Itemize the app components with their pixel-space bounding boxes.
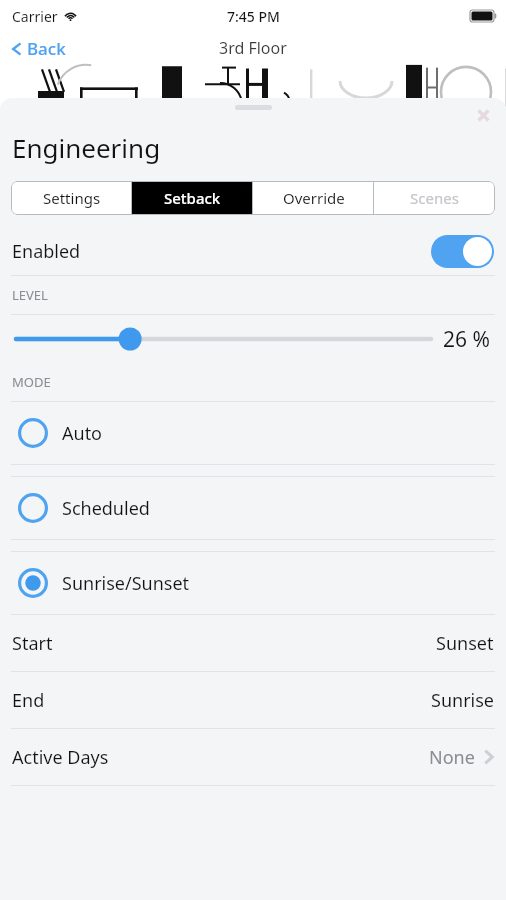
staticText: Sunrise [431,688,494,713]
staticText: Override [283,188,345,208]
staticText: Auto [62,421,103,446]
button[interactable]: Close [468,102,498,128]
staticText: Scenes [410,188,459,208]
staticText: 3rd Floor [219,37,287,59]
staticText: Active Days [12,745,109,770]
staticText: MODE [12,373,51,391]
staticText: Sunset [436,631,494,656]
button[interactable]: Back [0,33,76,64]
button[interactable] [16,324,431,354]
staticText: LEVEL [12,286,48,304]
button[interactable]: Scheduled [0,477,506,539]
button[interactable]: End [0,672,506,728]
staticText: 26 % [443,325,490,354]
staticText: Engineering [12,130,161,165]
button[interactable]: Override [253,181,374,215]
staticText: Enabled [12,239,81,264]
staticText: Scheduled [62,496,150,521]
staticText: End [12,688,45,713]
button[interactable]: Active Days [0,729,506,785]
button[interactable]: Settings [11,181,132,215]
staticText: Back [27,37,66,60]
button[interactable]: Enabled toggle, on [431,235,494,268]
staticText: Sunrise/Sunset [62,571,190,596]
button[interactable]: Enabled [0,227,506,275]
button[interactable]: Start [0,615,506,671]
staticText: Setback [164,188,221,208]
button[interactable]: Sunrise/Sunset [0,552,506,614]
button[interactable]: Setback [132,181,253,215]
staticText: 7:45 PM [227,7,280,26]
staticText: Start [12,631,53,656]
button[interactable]: Auto [0,402,506,464]
button[interactable]: Scenes [374,181,495,215]
staticText: Carrier [12,7,58,26]
staticText: None [429,745,475,770]
staticText: Settings [43,188,101,208]
